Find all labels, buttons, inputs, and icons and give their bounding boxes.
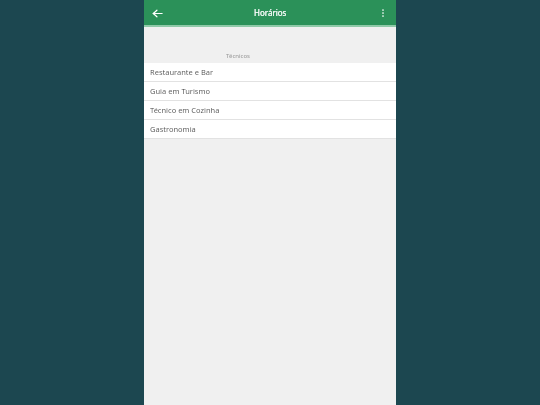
staticText: Gastronomia bbox=[150, 124, 196, 134]
staticText: Técnico em Cozinha bbox=[150, 105, 220, 115]
button[interactable]: Guia em Turismo bbox=[144, 82, 396, 100]
staticText: Restaurante e Bar bbox=[150, 67, 214, 77]
button[interactable]: Restaurante e Bar bbox=[144, 63, 396, 81]
staticText: Guia em Turismo bbox=[150, 86, 210, 96]
button[interactable]: Técnico em Cozinha bbox=[144, 101, 396, 119]
button[interactable]: Gastronomia bbox=[144, 120, 396, 138]
button[interactable]: Back bbox=[148, 4, 166, 22]
button[interactable]: More options bbox=[374, 4, 392, 22]
staticText: Horários bbox=[254, 7, 287, 18]
staticText: Técnicos bbox=[144, 52, 332, 60]
